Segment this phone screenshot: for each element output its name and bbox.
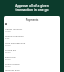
staticText: 9.99	[5, 37, 10, 40]
staticText: Approve all of a given transaction in on…	[15, 4, 49, 12]
staticText: Netflix monthly	[5, 27, 23, 30]
button[interactable]: Electricity	[4, 54, 60, 61]
staticText: 29.00	[5, 44, 11, 47]
staticText: 25.00	[5, 65, 11, 68]
button[interactable]: Internet plan	[4, 68, 60, 72]
button[interactable]: Phone bill	[4, 47, 60, 54]
button[interactable]: Filter	[5, 23, 7, 25]
staticText: Gym membership	[5, 41, 26, 44]
staticText: Payments	[4, 18, 60, 22]
button[interactable]: Gym membership	[4, 40, 60, 47]
button[interactable]: Netflix monthly	[4, 26, 60, 33]
staticText: Phone bill	[5, 48, 17, 51]
staticText: 60.00	[5, 58, 11, 61]
button[interactable]: Water supply	[4, 61, 60, 68]
staticText: Internet plan	[5, 68, 20, 71]
staticText: Electricity	[5, 55, 16, 58]
staticText: 35.50	[5, 51, 11, 54]
staticText: Water supply	[5, 62, 20, 65]
staticText: Spotify premium	[5, 34, 24, 37]
button[interactable]: Spotify premium	[4, 33, 60, 40]
staticText: 12.99	[5, 30, 11, 33]
